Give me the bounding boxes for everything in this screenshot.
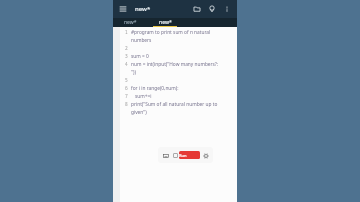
- button[interactable]: Bookmark: [206, 3, 218, 15]
- staticText: sum = 0: [131, 53, 149, 60]
- staticText: #program to print sum of n natural: [131, 29, 211, 36]
- staticText: Run program: [179, 153, 200, 158]
- staticText: sum+=i: [135, 93, 152, 100]
- staticText: numbers: [131, 37, 152, 44]
- staticText: new*: [124, 19, 137, 26]
- staticText: 7: [125, 93, 128, 99]
- button[interactable]: new*: [113, 18, 148, 27]
- staticText: new*: [135, 5, 151, 13]
- staticText: for i in range(0,num):: [131, 85, 179, 92]
- button[interactable]: Undo: [171, 151, 179, 159]
- staticText: 6: [125, 85, 128, 91]
- button[interactable]: More options: [221, 3, 233, 15]
- button[interactable]: Open file: [191, 3, 203, 15]
- button[interactable]: Open navigation menu: [117, 3, 129, 15]
- staticText: given"): [131, 109, 147, 116]
- button[interactable]: Keyboard: [161, 151, 170, 160]
- staticText: print("Sum of all natural number up to: [131, 101, 218, 108]
- button[interactable]: new*: [148, 18, 182, 27]
- staticText: 4: [125, 61, 128, 67]
- staticText: ")): [131, 69, 136, 76]
- button[interactable]: Settings: [202, 151, 210, 160]
- button[interactable]: Run program: [179, 151, 200, 159]
- staticText: num = int(input("How many numbers?:: [131, 61, 219, 68]
- staticText: 2: [125, 45, 128, 51]
- staticText: 3: [125, 53, 128, 59]
- staticText: new*: [159, 19, 172, 26]
- staticText: 5: [125, 77, 128, 83]
- staticText: 1: [125, 29, 128, 35]
- staticText: 8: [125, 101, 128, 107]
